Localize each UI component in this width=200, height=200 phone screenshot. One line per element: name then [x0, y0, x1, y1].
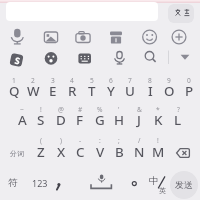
button[interactable]: N — [126, 143, 152, 159]
button[interactable] — [51, 136, 70, 166]
button[interactable] — [129, 136, 148, 166]
button[interactable] — [107, 48, 133, 68]
button[interactable] — [90, 136, 109, 166]
button[interactable]: 123 — [29, 176, 51, 190]
button[interactable] — [110, 136, 129, 166]
button[interactable] — [171, 136, 198, 166]
button[interactable] — [69, 27, 95, 47]
button[interactable]: ! — [34, 105, 48, 114]
button[interactable] — [159, 73, 178, 105]
button[interactable]: 1 — [7, 76, 21, 85]
button[interactable]: # — [73, 105, 87, 114]
button[interactable] — [167, 27, 193, 47]
button[interactable] — [71, 136, 90, 166]
button[interactable] — [12, 105, 31, 135]
button[interactable] — [140, 73, 159, 105]
button[interactable]: L — [165, 111, 191, 127]
button[interactable]: 符 — [5, 176, 21, 190]
button[interactable] — [146, 167, 168, 198]
button[interactable]: 4 — [65, 76, 79, 85]
button[interactable]: 8 — [143, 76, 157, 85]
button[interactable] — [101, 73, 120, 105]
button[interactable]: ) — [54, 136, 68, 145]
button[interactable] — [73, 48, 99, 68]
button[interactable] — [62, 73, 81, 105]
button[interactable] — [70, 167, 126, 198]
button[interactable]: C — [67, 143, 93, 159]
button[interactable] — [141, 48, 167, 68]
button[interactable] — [176, 49, 194, 66]
button[interactable]: 0 — [182, 76, 196, 85]
button[interactable] — [168, 4, 194, 23]
button[interactable]: 7 — [123, 76, 137, 85]
button[interactable]: 发送 — [170, 171, 198, 199]
button[interactable] — [43, 73, 62, 105]
button[interactable]: 英 — [156, 185, 168, 195]
button[interactable] — [4, 73, 23, 105]
button[interactable]: I — [137, 82, 163, 98]
button[interactable]: W — [20, 82, 46, 98]
button[interactable] — [2, 167, 24, 198]
button[interactable]: Q — [1, 82, 27, 98]
button[interactable] — [178, 73, 197, 105]
button[interactable] — [4, 27, 30, 47]
button[interactable]: 3 — [46, 76, 60, 85]
button[interactable] — [27, 167, 51, 198]
button[interactable]: E — [40, 82, 66, 98]
button[interactable]: ! — [151, 136, 165, 145]
button[interactable]: D — [48, 111, 74, 127]
button[interactable]: 9 — [162, 76, 176, 85]
button[interactable] — [134, 27, 160, 47]
button[interactable]: Y — [98, 82, 124, 98]
button[interactable]: A — [9, 111, 35, 127]
button[interactable] — [129, 105, 148, 135]
button[interactable]: R — [59, 82, 85, 98]
button[interactable]: K — [145, 111, 171, 127]
button[interactable]: % — [93, 105, 107, 114]
button[interactable]: ; — [112, 136, 126, 145]
button[interactable] — [149, 105, 168, 135]
button[interactable]: O — [156, 82, 182, 98]
button[interactable]: H — [106, 111, 132, 127]
button[interactable] — [149, 136, 168, 166]
button[interactable] — [81, 73, 100, 105]
button[interactable]: ( — [34, 136, 48, 145]
button[interactable] — [32, 105, 51, 135]
button[interactable]: ' — [112, 105, 126, 114]
button[interactable]: T — [79, 82, 105, 98]
button[interactable]: M — [145, 143, 171, 159]
button[interactable]: @ — [54, 105, 68, 114]
button[interactable]: X — [48, 143, 74, 159]
button[interactable]: S — [28, 111, 54, 127]
button[interactable]: 中 — [147, 175, 161, 187]
button[interactable] — [102, 27, 128, 47]
button[interactable]: 2 — [26, 76, 40, 85]
button[interactable] — [32, 136, 51, 166]
button[interactable]: J — [126, 111, 152, 127]
button[interactable] — [2, 136, 30, 166]
button[interactable] — [5, 48, 31, 68]
button[interactable] — [71, 105, 90, 135]
button[interactable] — [39, 48, 65, 68]
button[interactable] — [168, 105, 187, 135]
button[interactable] — [120, 73, 139, 105]
button[interactable] — [51, 105, 70, 135]
button[interactable]: ? — [171, 105, 185, 114]
button[interactable] — [110, 105, 129, 135]
button[interactable]: ~ — [15, 105, 29, 114]
button[interactable]: G — [87, 111, 113, 127]
button[interactable]: / — [132, 136, 146, 145]
button[interactable]: : — [93, 136, 107, 145]
button[interactable]: F — [67, 111, 93, 127]
button[interactable]: * — [151, 105, 165, 114]
button[interactable]: Z — [28, 143, 54, 159]
button[interactable]: - — [73, 136, 87, 145]
button[interactable]: 6 — [104, 76, 118, 85]
button[interactable]: & — [132, 105, 146, 114]
button[interactable]: P — [176, 82, 200, 98]
button[interactable]: 分词 — [7, 147, 27, 159]
button[interactable] — [52, 167, 67, 198]
button[interactable] — [128, 167, 142, 198]
button[interactable]: V — [87, 143, 113, 159]
